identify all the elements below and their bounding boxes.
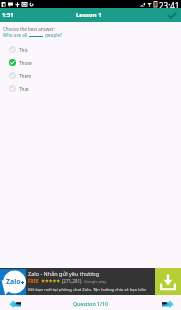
button[interactable]: This [0, 43, 181, 56]
staticText: Zalo [6, 277, 21, 287]
staticText: FREE [28, 278, 39, 284]
staticText: 23:41 [159, 0, 180, 8]
staticText: Choose the best answer: [3, 26, 55, 32]
staticText: Them [19, 73, 32, 79]
staticText: 1:51 [2, 11, 14, 19]
button[interactable]: Submit answers [163, 8, 181, 22]
button[interactable]: Them [0, 69, 181, 82]
staticText: (271,291) [62, 278, 82, 284]
button[interactable]: Previous question [0, 295, 29, 310]
staticText: That [19, 86, 29, 92]
staticText: Lesson 1 [76, 11, 102, 19]
staticText: Those [19, 60, 32, 66]
button[interactable]: That [0, 82, 181, 95]
staticText: Zalo - Nhắn gửi yêu thương [28, 270, 100, 277]
button[interactable]: Install [155, 268, 181, 295]
staticText: Google play [84, 279, 107, 284]
staticText: Who are all [3, 32, 28, 38]
button[interactable]: Next question [152, 295, 181, 310]
button[interactable]: Those [0, 56, 181, 69]
staticText: Question 1/10 [73, 300, 108, 307]
staticText: This [19, 47, 28, 53]
staticText: people? [44, 32, 62, 38]
staticText: Kết bạn mới tại phòng chat Zalo. Tận hưở… [28, 287, 155, 293]
